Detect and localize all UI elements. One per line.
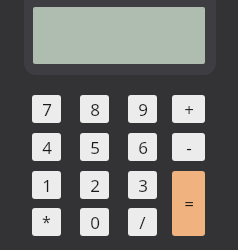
button[interactable]: 8 xyxy=(80,95,109,123)
staticText: / xyxy=(139,211,146,234)
button[interactable]: 9 xyxy=(128,95,157,123)
staticText: 8 xyxy=(90,98,100,121)
button[interactable]: 5 xyxy=(80,133,109,161)
staticText: 1 xyxy=(42,174,52,197)
staticText: * xyxy=(42,211,51,233)
staticText: 3 xyxy=(138,174,148,197)
button[interactable]: 7 xyxy=(32,95,61,123)
staticText: 6 xyxy=(138,136,148,159)
staticText: 2 xyxy=(90,174,100,197)
button[interactable]: / xyxy=(128,208,157,236)
button[interactable]: 4 xyxy=(32,133,61,161)
button[interactable]: 3 xyxy=(128,171,157,199)
staticText: 9 xyxy=(138,98,148,121)
button[interactable]: - xyxy=(172,133,205,161)
button[interactable]: * xyxy=(32,208,61,236)
button[interactable]: 1 xyxy=(32,171,61,199)
staticText: + xyxy=(184,98,194,121)
staticText: 5 xyxy=(90,136,100,159)
button[interactable]: + xyxy=(172,95,205,123)
staticText: 4 xyxy=(42,136,52,159)
staticText: - xyxy=(186,136,192,159)
button[interactable]: 2 xyxy=(80,171,109,199)
button[interactable]: 0 xyxy=(80,208,109,236)
button[interactable]: = xyxy=(172,171,205,236)
staticText: = xyxy=(184,192,194,215)
staticText: 0 xyxy=(90,211,100,234)
button[interactable]: 6 xyxy=(128,133,157,161)
staticText: 7 xyxy=(42,98,52,121)
